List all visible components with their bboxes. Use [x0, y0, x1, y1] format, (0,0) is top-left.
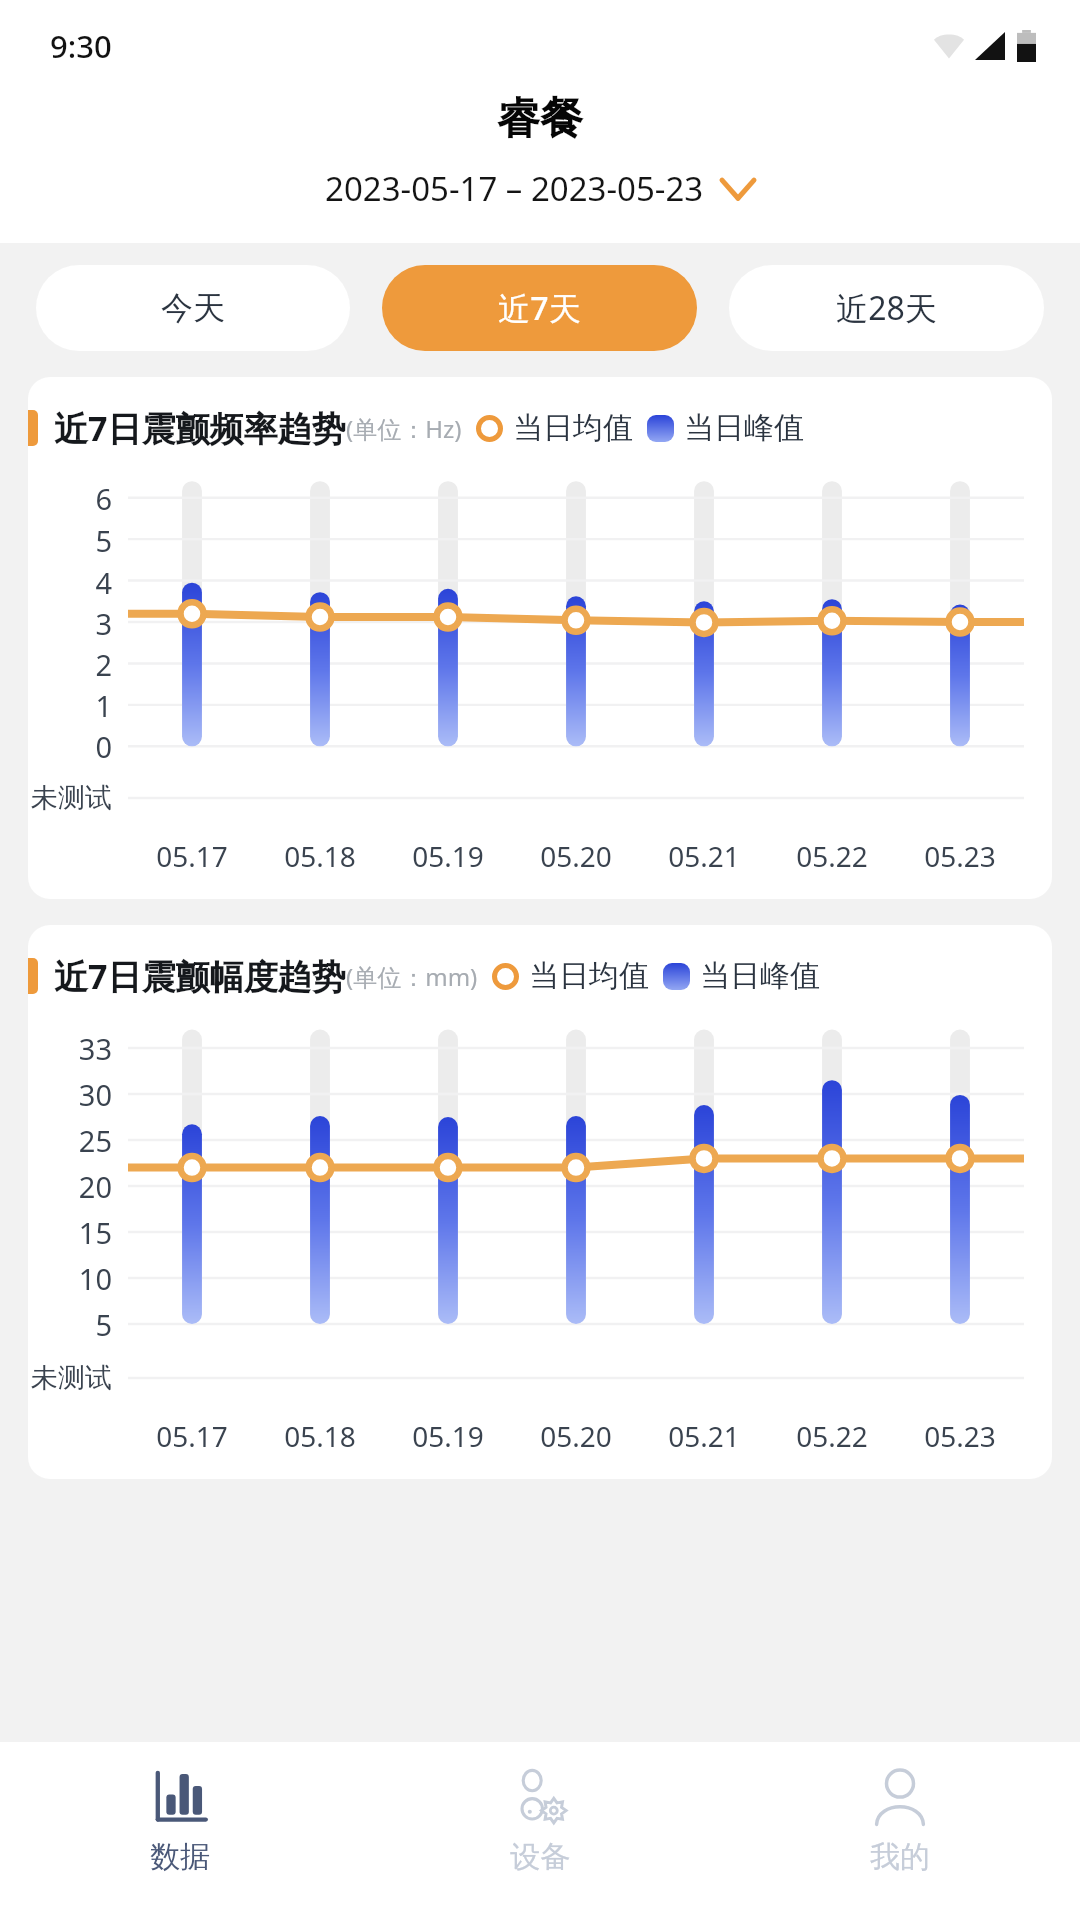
- staticText: 33: [78, 1029, 112, 1068]
- staticText: 25: [78, 1121, 112, 1160]
- staticText: 05.21: [668, 837, 740, 875]
- staticText: 05.21: [668, 1417, 740, 1455]
- button[interactable]: 数据: [0, 1742, 360, 1920]
- staticText: 05.19: [412, 837, 484, 875]
- button[interactable]: 近7日震颤幅度趋势: [28, 925, 1052, 1479]
- button[interactable]: 2023-05-17 – 2023-05-23: [315, 162, 766, 215]
- staticText: 数据: [150, 1838, 210, 1876]
- staticText: 15: [78, 1213, 112, 1252]
- staticText: 当日峰值: [700, 957, 820, 995]
- staticText: 05.20: [540, 1417, 612, 1455]
- other: 选择日期范围: [720, 178, 756, 200]
- staticText: 05.17: [156, 1417, 228, 1455]
- staticText: 近7日震颤幅度趋势: [54, 953, 346, 999]
- staticText: 1: [95, 686, 112, 725]
- staticText: 30: [78, 1075, 112, 1114]
- staticText: 当日均值: [529, 957, 649, 995]
- staticText: 今天: [161, 288, 225, 328]
- button[interactable]: 近7天: [382, 265, 697, 351]
- staticText: 05.22: [796, 837, 868, 875]
- staticText: (单位：Hz): [346, 412, 462, 445]
- staticText: 10: [78, 1259, 112, 1298]
- staticText: 我的: [870, 1838, 930, 1876]
- staticText: 5: [95, 1305, 112, 1344]
- other: 数据: [150, 1768, 210, 1828]
- staticText: 05.22: [796, 1417, 868, 1455]
- staticText: 2023-05-17 – 2023-05-23: [325, 166, 704, 211]
- button[interactable]: 今天: [36, 265, 350, 351]
- staticText: 设备: [510, 1838, 570, 1876]
- staticText: 05.18: [284, 837, 356, 875]
- staticText: 当日均值: [513, 409, 633, 447]
- staticText: 2: [95, 645, 112, 684]
- staticText: 当日峰值: [684, 409, 804, 447]
- staticText: 20: [78, 1167, 112, 1206]
- staticText: 4: [95, 563, 112, 602]
- other: 我的: [870, 1768, 930, 1828]
- staticText: 睿餐: [497, 92, 583, 146]
- staticText: 9:30: [50, 25, 112, 67]
- staticText: 近28天: [836, 286, 937, 330]
- staticText: 0: [95, 727, 112, 766]
- button[interactable]: 设备: [360, 1742, 720, 1920]
- staticText: 6: [95, 479, 112, 518]
- staticText: 05.20: [540, 837, 612, 875]
- staticText: 05.23: [924, 837, 996, 875]
- staticText: 近7日震颤频率趋势: [54, 405, 346, 451]
- staticText: 近7天: [498, 286, 581, 330]
- staticText: 3: [95, 604, 112, 643]
- other: 设备: [510, 1768, 570, 1828]
- button[interactable]: 我的: [720, 1742, 1080, 1920]
- staticText: 05.19: [412, 1417, 484, 1455]
- staticText: 未测试: [31, 781, 112, 815]
- staticText: 05.18: [284, 1417, 356, 1455]
- button[interactable]: 近28天: [729, 265, 1044, 351]
- staticText: 05.17: [156, 837, 228, 875]
- staticText: 未测试: [31, 1361, 112, 1395]
- staticText: 05.23: [924, 1417, 996, 1455]
- button[interactable]: 近7日震颤频率趋势: [28, 377, 1052, 899]
- staticText: 5: [95, 521, 112, 560]
- staticText: (单位：mm): [346, 960, 478, 993]
